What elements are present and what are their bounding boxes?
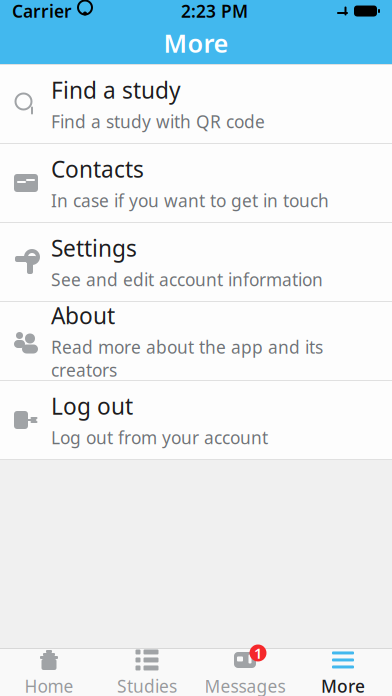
- staticText: More: [321, 674, 365, 696]
- staticText: About: [51, 300, 115, 330]
- staticText: In case if you want to get in touch: [51, 189, 329, 212]
- staticText: Contacts: [51, 154, 144, 184]
- staticText: 2:23 PM: [181, 0, 248, 22]
- staticText: More: [163, 26, 228, 60]
- staticText: Home: [24, 674, 73, 696]
- staticText: Settings: [51, 233, 137, 263]
- staticText: Carrier: [12, 0, 72, 22]
- button[interactable]: Contacts: [0, 144, 392, 222]
- staticText: Messages: [204, 674, 285, 696]
- button[interactable]: Log out: [0, 381, 392, 459]
- button[interactable]: Home: [0, 649, 98, 696]
- button[interactable]: About: [0, 302, 392, 380]
- staticText: Read more about the app and its creators: [51, 335, 323, 381]
- button[interactable]: 1: [196, 649, 294, 696]
- staticText: Find a study with QR code: [51, 110, 265, 133]
- staticText: Log out: [51, 391, 133, 421]
- staticText: Log out from your account: [51, 426, 268, 449]
- staticText: See and edit account information: [51, 268, 323, 291]
- staticText: Find a study: [51, 75, 181, 105]
- button[interactable]: Studies: [98, 649, 196, 696]
- button[interactable]: Settings: [0, 223, 392, 301]
- staticText: 1: [254, 643, 262, 663]
- button[interactable]: More: [294, 649, 392, 696]
- staticText: Studies: [117, 674, 177, 696]
- button[interactable]: Find a study: [0, 65, 392, 143]
